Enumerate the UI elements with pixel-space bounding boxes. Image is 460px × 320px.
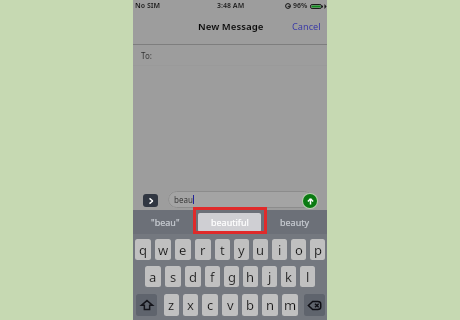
button[interactable]: l bbox=[300, 266, 315, 287]
staticText: i bbox=[278, 241, 282, 259]
button[interactable]: Shift bbox=[136, 294, 157, 316]
button[interactable]: App drawer bbox=[143, 194, 158, 207]
button[interactable]: h bbox=[243, 266, 258, 287]
staticText: m bbox=[284, 296, 297, 314]
staticText: h bbox=[246, 268, 255, 286]
button[interactable]: Cancel bbox=[292, 20, 321, 33]
staticText: beautiful bbox=[211, 216, 249, 228]
staticText: "beau" bbox=[151, 216, 180, 228]
staticText: To: bbox=[141, 50, 152, 61]
button[interactable]: q bbox=[135, 239, 151, 260]
button[interactable]: y bbox=[234, 239, 249, 260]
staticText: r bbox=[200, 241, 206, 259]
staticText: u bbox=[256, 241, 265, 259]
button[interactable]: m bbox=[282, 294, 298, 316]
button[interactable]: a bbox=[145, 266, 161, 287]
button[interactable]: beauty bbox=[262, 210, 327, 235]
button[interactable]: f bbox=[205, 266, 220, 287]
button[interactable]: i bbox=[272, 239, 287, 260]
button[interactable]: v bbox=[222, 294, 238, 316]
button[interactable]: Backspace bbox=[304, 294, 325, 316]
button[interactable]: k bbox=[281, 266, 296, 287]
button[interactable]: beautiful bbox=[198, 213, 261, 232]
staticText: t bbox=[220, 241, 225, 259]
button[interactable]: j bbox=[262, 266, 277, 287]
staticText: a bbox=[149, 268, 157, 286]
staticText: beau bbox=[174, 194, 193, 205]
staticText: b bbox=[246, 296, 254, 314]
button[interactable]: e bbox=[175, 239, 191, 260]
button[interactable]: x bbox=[183, 294, 198, 316]
button[interactable]: z bbox=[164, 294, 179, 316]
staticText: s bbox=[170, 268, 177, 286]
staticText: k bbox=[285, 268, 292, 286]
button[interactable]: c bbox=[202, 294, 218, 316]
staticText: j bbox=[268, 268, 272, 286]
button[interactable]: g bbox=[224, 266, 239, 287]
button[interactable]: r bbox=[195, 239, 211, 260]
button[interactable]: u bbox=[253, 239, 268, 260]
staticText: y bbox=[238, 241, 245, 259]
button[interactable]: "beau" bbox=[133, 210, 197, 235]
staticText: New Message bbox=[198, 20, 264, 33]
staticText: g bbox=[228, 268, 236, 286]
staticText: x bbox=[187, 296, 194, 314]
button[interactable]: p bbox=[310, 239, 325, 260]
staticText: o bbox=[295, 241, 303, 259]
button[interactable]: b bbox=[242, 294, 258, 316]
button[interactable]: Send bbox=[303, 194, 317, 208]
button[interactable]: n bbox=[262, 294, 278, 316]
button[interactable]: t bbox=[215, 239, 230, 260]
staticText: 3:48 AM bbox=[217, 1, 245, 11]
button[interactable]: o bbox=[291, 239, 306, 260]
button[interactable]: w bbox=[155, 239, 171, 260]
staticText: e bbox=[179, 241, 187, 259]
button[interactable]: s bbox=[165, 266, 181, 287]
staticText: c bbox=[207, 296, 214, 314]
staticText: No SIM bbox=[135, 1, 161, 11]
staticText: d bbox=[189, 268, 197, 286]
staticText: w bbox=[158, 241, 169, 259]
staticText: p bbox=[314, 241, 322, 259]
staticText: q bbox=[139, 241, 147, 259]
staticText: v bbox=[227, 296, 234, 314]
staticText: z bbox=[168, 296, 175, 314]
staticText: f bbox=[210, 268, 215, 286]
staticText: beauty bbox=[280, 216, 310, 228]
staticText: l bbox=[306, 268, 310, 286]
button[interactable]: d bbox=[185, 266, 201, 287]
staticText: 96% bbox=[293, 1, 308, 11]
button[interactable]: beau bbox=[168, 191, 313, 208]
staticText: n bbox=[266, 296, 275, 314]
